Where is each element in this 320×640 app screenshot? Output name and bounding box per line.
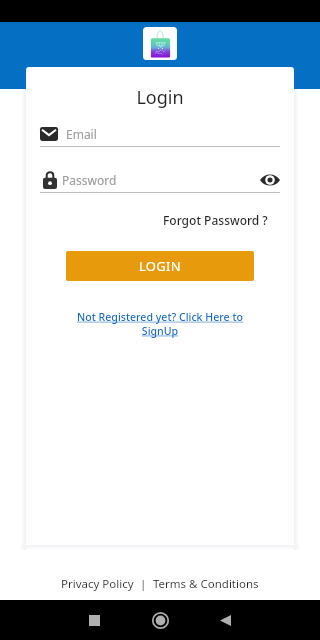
staticText: |: [134, 576, 153, 592]
button[interactable]: Email: [40, 124, 280, 144]
staticText: LOGIN: [139, 257, 181, 275]
button[interactable]: Terms & Conditions: [153, 576, 259, 592]
button[interactable]: Password: [40, 170, 280, 190]
staticText: Email: [66, 126, 97, 142]
staticText: Login: [26, 85, 294, 110]
button[interactable]: Show password: [260, 170, 280, 190]
button[interactable]: LOGIN: [66, 251, 254, 281]
button[interactable]: Privacy Policy: [61, 576, 134, 592]
button[interactable]: Recents: [80, 606, 108, 634]
button[interactable]: Back: [211, 606, 239, 634]
button[interactable]: Forgot Password ?: [163, 212, 268, 228]
button[interactable]: Not Registered yet? Click Here to SignUp: [77, 310, 243, 338]
button[interactable]: Home: [146, 606, 174, 634]
staticText: Password: [62, 172, 117, 188]
